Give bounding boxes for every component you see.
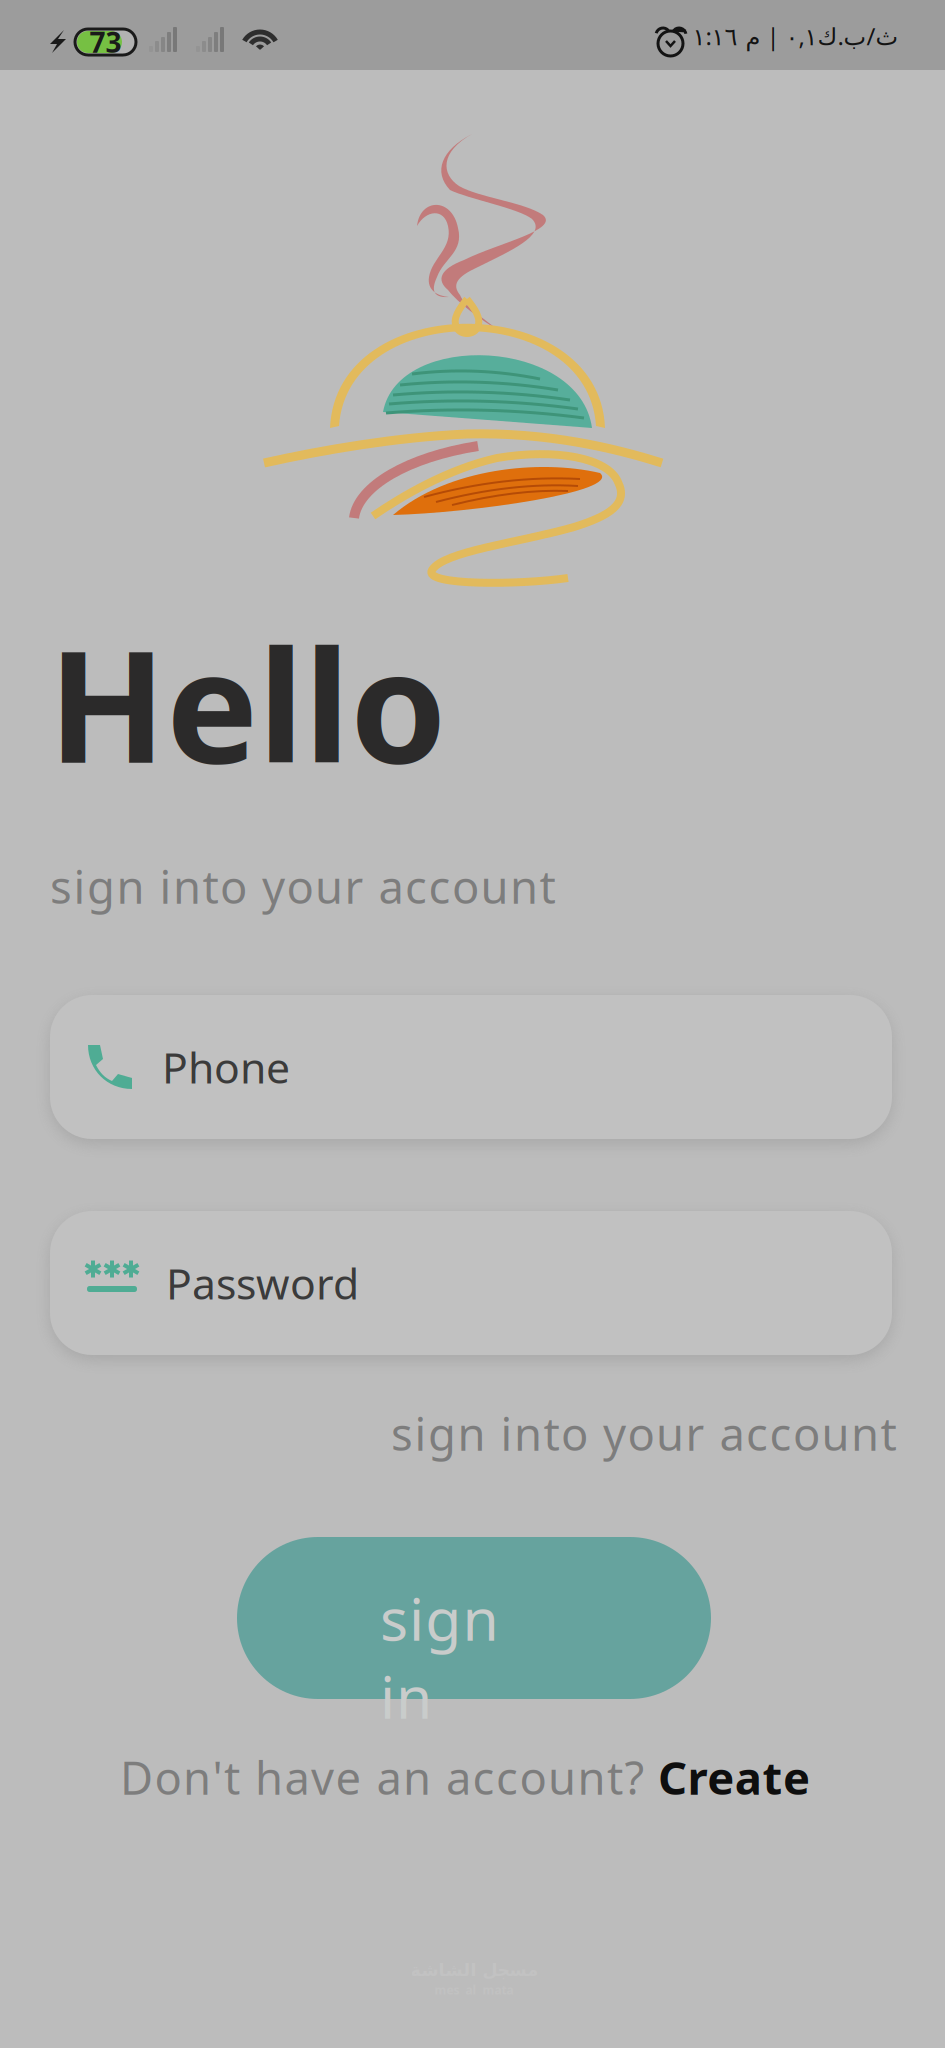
staticText: Hello bbox=[48, 600, 447, 805]
staticText: Password bbox=[166, 1255, 359, 1311]
button[interactable]: Don't have an account? bbox=[120, 1747, 810, 1807]
button[interactable]: sign in bbox=[237, 1537, 711, 1699]
button[interactable]: Password bbox=[50, 1211, 892, 1355]
staticText: sign into your account bbox=[50, 856, 555, 916]
staticText: sign into your account bbox=[391, 1403, 896, 1463]
staticText: 73 bbox=[89, 23, 121, 61]
button[interactable]: Phone bbox=[50, 995, 892, 1139]
staticText: sign in bbox=[380, 1579, 568, 1657]
staticText: ث/ب.ك٠,١ | م ١:١٦ bbox=[692, 20, 898, 52]
staticText: Create bbox=[658, 1747, 810, 1807]
staticText: Don't have an account? bbox=[120, 1747, 658, 1807]
staticText: Phone bbox=[162, 1039, 290, 1095]
button[interactable]: sign into your account bbox=[391, 1403, 896, 1463]
